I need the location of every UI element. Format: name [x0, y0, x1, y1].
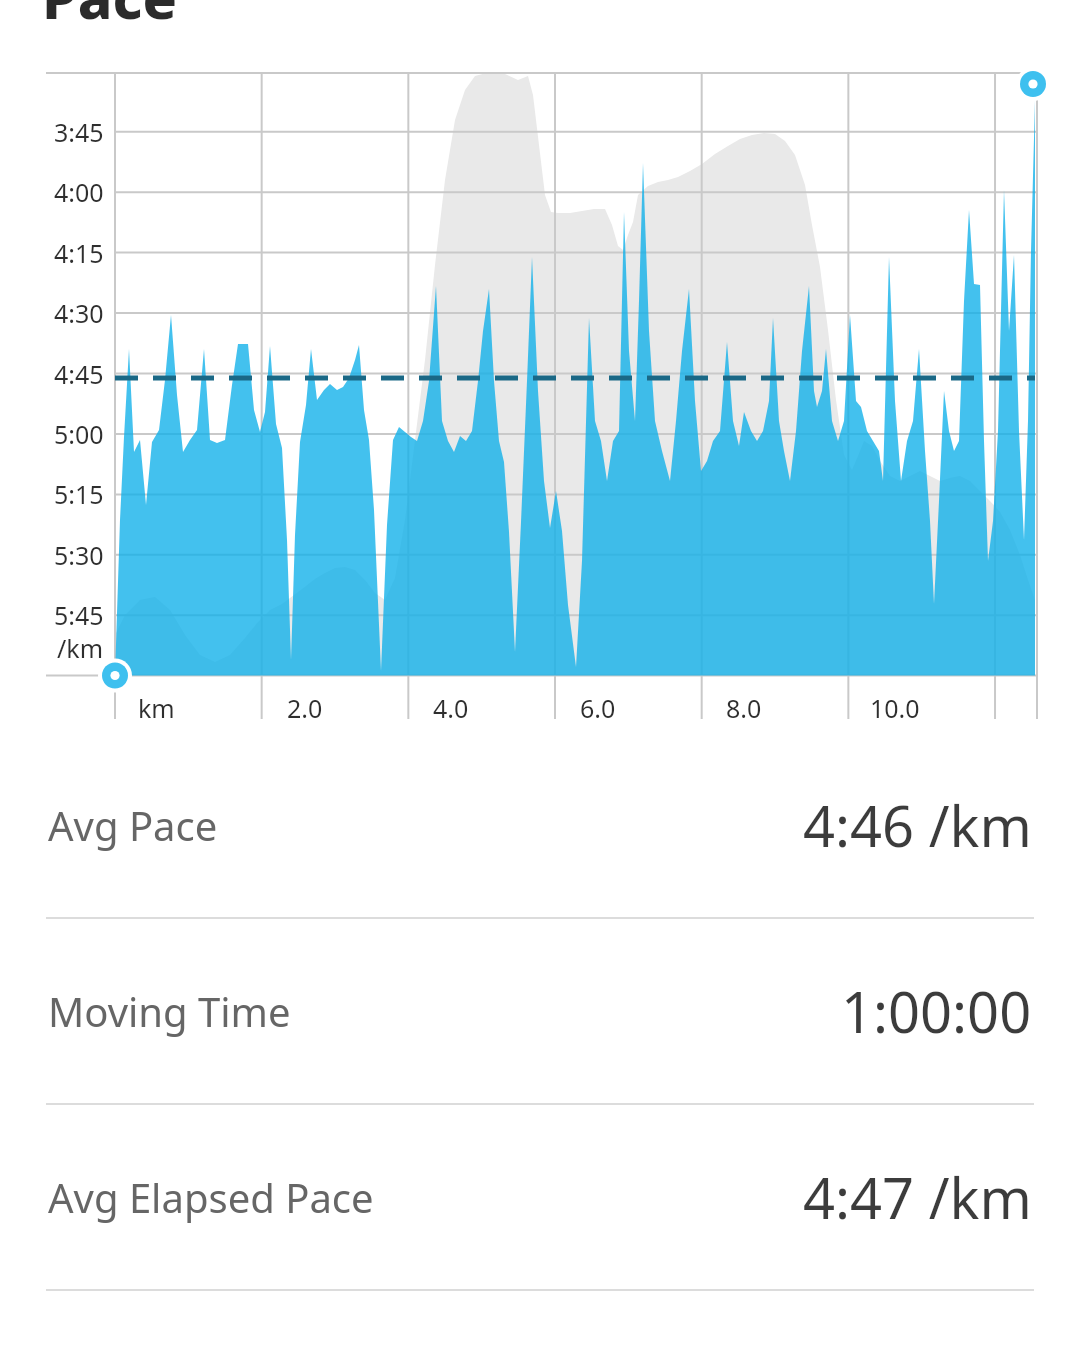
staticText: Pace: [42, 0, 178, 36]
staticText: 10.0: [870, 691, 920, 725]
staticText: Avg Elapsed Pace: [48, 1170, 374, 1224]
staticText: 4:45: [54, 357, 104, 391]
staticText: 8.0: [726, 691, 762, 725]
staticText: 4.0: [433, 691, 469, 725]
staticText: 4:15: [54, 236, 104, 270]
staticText: 4:30: [54, 296, 104, 330]
staticText: 3:45: [54, 115, 104, 149]
staticText: 6.0: [580, 691, 616, 725]
staticText: 1:00:00: [841, 973, 1032, 1049]
staticText: km: [138, 691, 175, 725]
button[interactable]: Moving Time: [0, 919, 1080, 1103]
staticText: 4:00: [54, 175, 104, 209]
staticText: 5:45: [54, 598, 104, 632]
staticText: 4:47 /km: [803, 1159, 1032, 1235]
button[interactable]: Avg Pace: [0, 733, 1080, 917]
button[interactable]: Avg Elapsed Pace: [0, 1105, 1080, 1289]
staticText: 5:15: [54, 477, 104, 511]
staticText: 5:00: [54, 417, 104, 451]
staticText: Avg Pace: [48, 798, 218, 852]
staticText: 4:46 /km: [803, 787, 1032, 863]
staticText: /km: [57, 631, 104, 665]
staticText: 2.0: [287, 691, 323, 725]
staticText: 5:30: [54, 538, 104, 572]
staticText: Moving Time: [48, 984, 291, 1038]
